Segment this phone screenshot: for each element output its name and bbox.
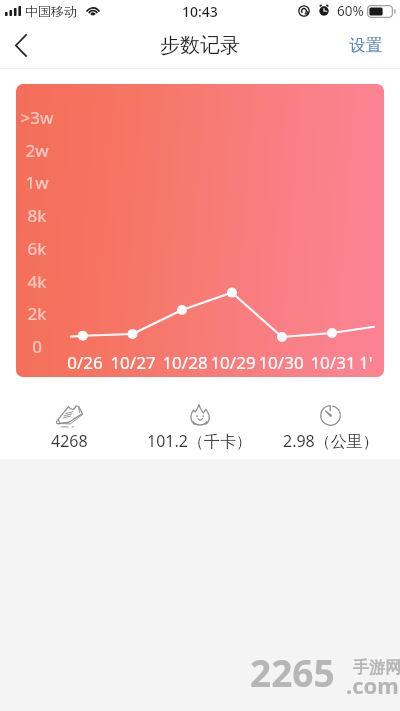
staticText: 中国移动: [25, 3, 77, 19]
staticText: 4k: [18, 270, 56, 293]
button[interactable]: 101.2（千卡）: [134, 401, 265, 452]
staticText: 1w: [18, 171, 56, 194]
staticText: 0: [18, 335, 56, 358]
button[interactable]: 返回: [0, 22, 42, 67]
staticText: 6k: [18, 237, 56, 260]
staticText: 10/28: [160, 351, 210, 374]
button[interactable]: 2.98（公里）: [265, 401, 396, 452]
button[interactable]: 设置: [331, 22, 400, 67]
staticText: 步数记录: [160, 33, 240, 58]
staticText: 101.2（千卡）: [147, 430, 252, 452]
staticText: 0/26: [60, 351, 110, 374]
staticText: 10/30: [256, 351, 306, 374]
staticText: 4268: [51, 430, 88, 452]
staticText: 2k: [18, 302, 56, 325]
staticText: 10/29: [208, 351, 258, 374]
button[interactable]: 4268: [4, 401, 134, 452]
staticText: 设置: [349, 35, 382, 56]
staticText: 60%: [337, 2, 364, 20]
staticText: 1': [359, 351, 373, 374]
staticText: 2265: [250, 647, 335, 689]
staticText: >3w: [18, 106, 56, 129]
staticText: 8k: [18, 204, 56, 227]
staticText: 2w: [18, 139, 56, 162]
staticText: 10/27: [108, 351, 158, 374]
staticText: 10/31: [308, 351, 358, 374]
staticText: 2.98（公里）: [283, 430, 379, 452]
staticText: 10:43: [182, 2, 218, 21]
staticText: 手游网: [353, 658, 400, 678]
staticText: .com: [346, 670, 399, 700]
